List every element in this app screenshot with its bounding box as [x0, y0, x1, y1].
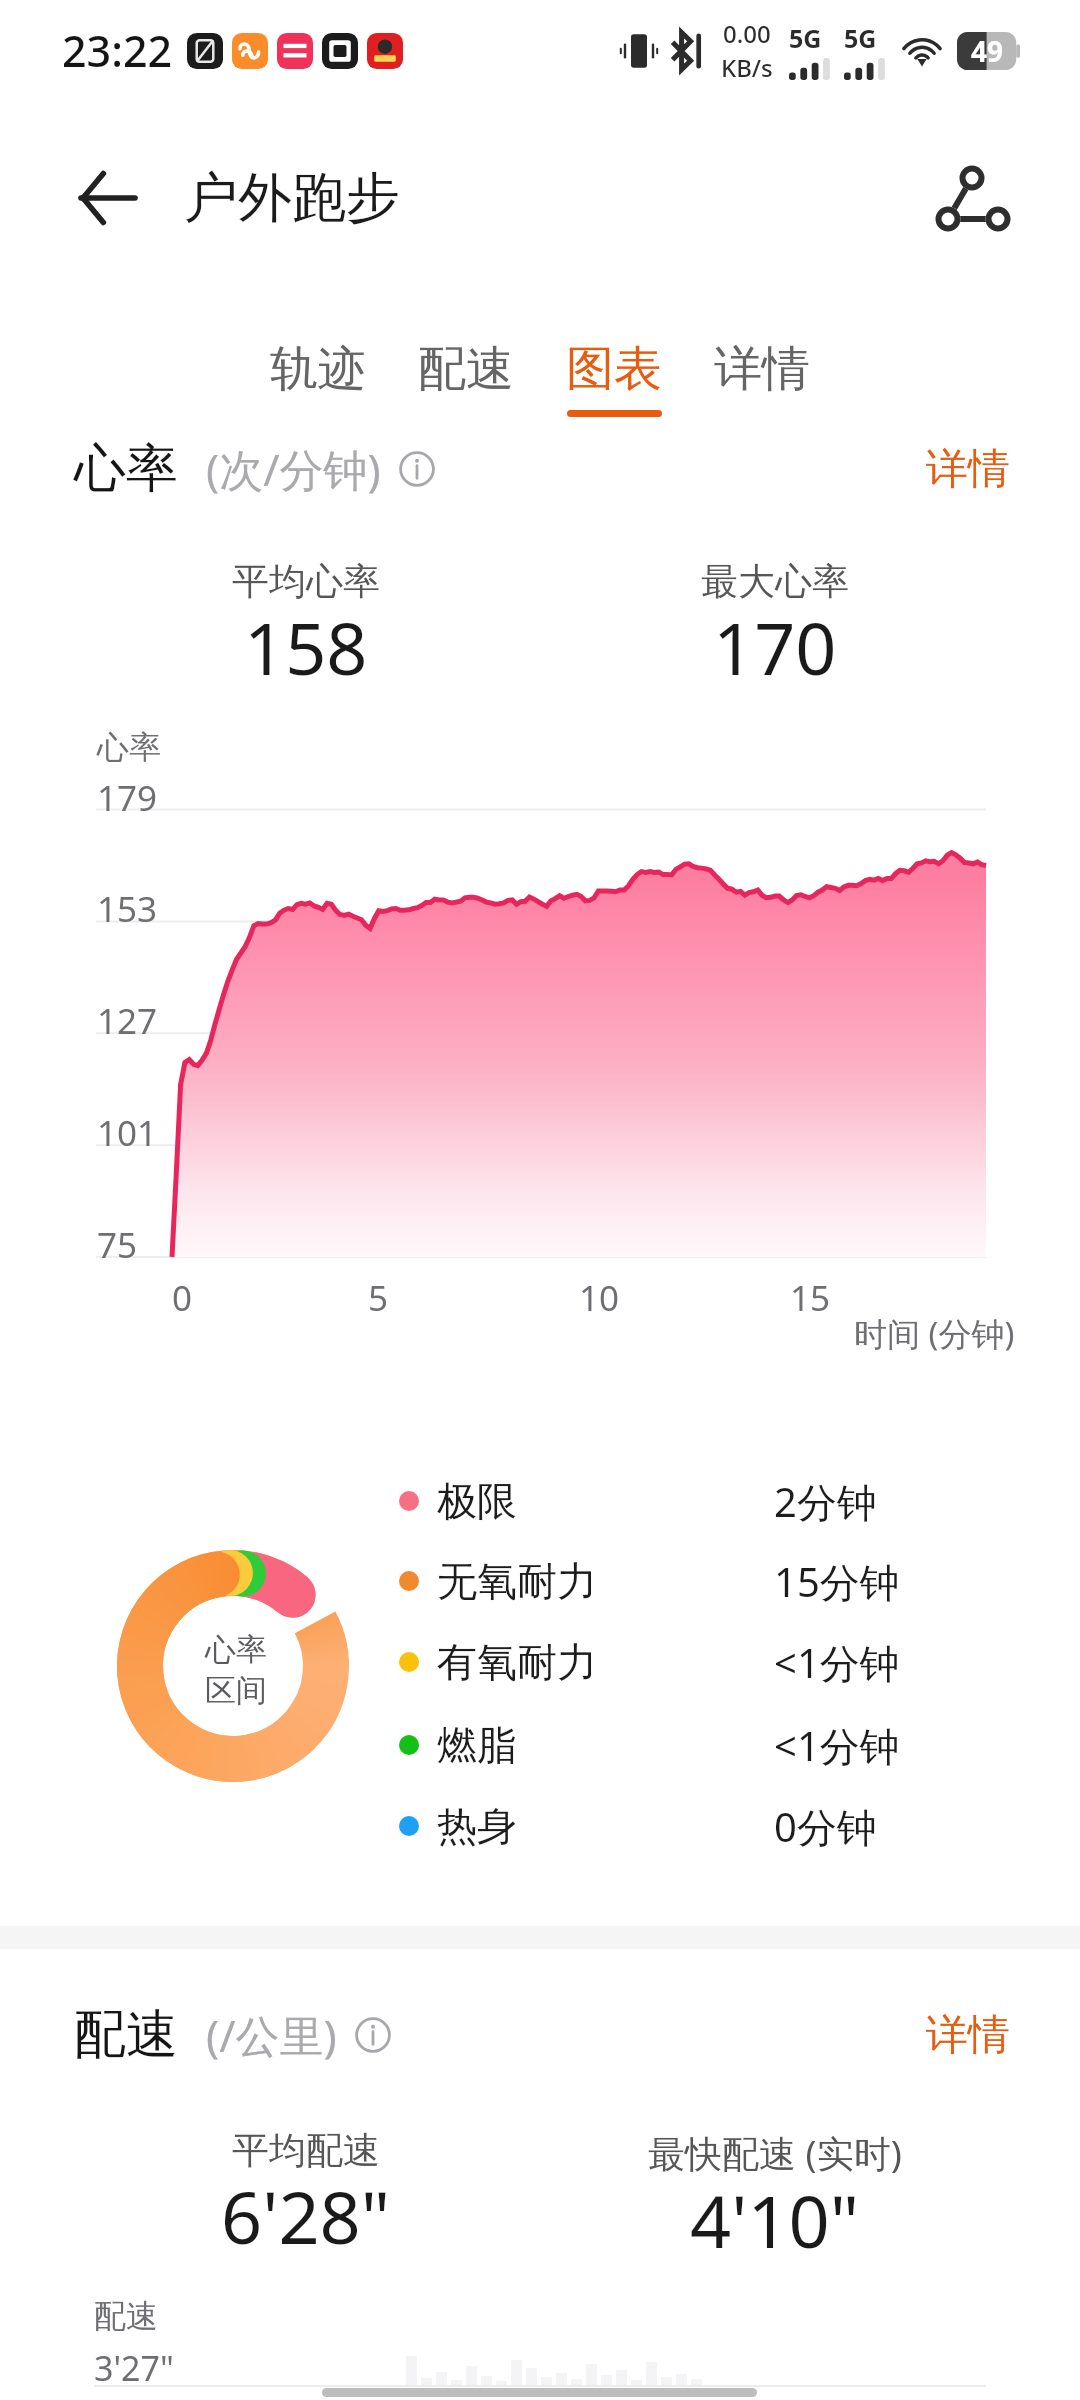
- staticText: 最快配速 (实时): [648, 2127, 902, 2178]
- staticText: 详情: [714, 339, 810, 399]
- button[interactable]: 详情: [688, 339, 836, 417]
- staticText: 轨迹: [270, 339, 366, 399]
- staticText: 极限: [437, 1476, 517, 1526]
- button[interactable]: 图表: [540, 339, 688, 417]
- staticText: 153: [97, 885, 158, 933]
- staticText: 心率: [97, 727, 161, 767]
- staticText: 最大心率: [701, 558, 849, 605]
- staticText: 区间: [205, 1671, 267, 1710]
- staticText: 图表: [566, 339, 662, 399]
- staticText: 燃脂: [437, 1720, 517, 1770]
- button[interactable]: 详情: [900, 1997, 1036, 2074]
- staticText: 0.00: [723, 17, 771, 50]
- staticText: 5G: [844, 21, 877, 55]
- staticText: 23:22: [62, 21, 173, 80]
- staticText: 2分钟: [774, 1474, 959, 1529]
- staticText: 配速: [418, 339, 514, 399]
- staticText: 0: [172, 1274, 193, 1322]
- staticText: 无氧耐力: [437, 1556, 597, 1606]
- staticText: 时间 (分钟): [854, 1311, 1015, 1356]
- button[interactable]: 详情: [900, 431, 1036, 508]
- staticText: KB/s: [721, 51, 773, 84]
- staticText: 15: [790, 1274, 831, 1322]
- staticText: 户外跑步: [184, 164, 400, 232]
- staticText: 心率: [74, 436, 178, 502]
- button[interactable]: 热身: [399, 1786, 959, 1866]
- staticText: <1分钟: [774, 1635, 959, 1690]
- button[interactable]: 平均心率: [46, 558, 566, 694]
- staticText: 179: [97, 774, 158, 822]
- staticText: (/公里): [206, 2005, 337, 2065]
- staticText: 170: [713, 598, 837, 687]
- staticText: 158: [244, 598, 368, 687]
- button[interactable]: 燃脂: [399, 1705, 959, 1785]
- staticText: 详情: [926, 443, 1010, 496]
- button[interactable]: 分享: [925, 130, 1021, 266]
- button[interactable]: 返回: [60, 150, 156, 246]
- staticText: 配速: [94, 2296, 158, 2336]
- staticText: 15分钟: [774, 1554, 959, 1609]
- button[interactable]: 轨迹: [244, 339, 392, 417]
- button[interactable]: 极限: [399, 1461, 959, 1541]
- staticText: 平均配速: [232, 2127, 380, 2174]
- staticText: 5G: [789, 21, 822, 55]
- staticText: 心率: [205, 1630, 267, 1669]
- staticText: <1分钟: [774, 1718, 959, 1773]
- staticText: 0分钟: [774, 1799, 959, 1854]
- button[interactable]: 说明: [399, 451, 435, 487]
- button[interactable]: 说明: [355, 2017, 391, 2053]
- staticText: 3'27": [94, 2345, 174, 2391]
- button[interactable]: 配速: [392, 339, 540, 417]
- staticText: 平均心率: [232, 558, 380, 605]
- staticText: 101: [97, 1109, 158, 1157]
- button[interactable]: 有氧耐力: [399, 1622, 959, 1702]
- staticText: 详情: [926, 2009, 1010, 2062]
- staticText: 5: [368, 1274, 389, 1322]
- staticText: 127: [97, 997, 158, 1045]
- staticText: 75: [97, 1221, 138, 1269]
- button[interactable]: 最快配速 (实时): [515, 2127, 1035, 2263]
- staticText: 有氧耐力: [437, 1637, 597, 1687]
- staticText: 4'10": [690, 2171, 860, 2256]
- staticText: (次/分钟): [206, 439, 381, 499]
- button[interactable]: 平均配速: [46, 2127, 566, 2263]
- staticText: 6'28": [221, 2167, 391, 2256]
- staticText: 热身: [437, 1801, 517, 1851]
- staticText: 配速: [74, 2002, 178, 2068]
- staticText: 49: [971, 32, 1004, 70]
- button[interactable]: 无氧耐力: [399, 1541, 959, 1621]
- button[interactable]: 最大心率: [515, 558, 1035, 694]
- staticText: 10: [579, 1274, 620, 1322]
